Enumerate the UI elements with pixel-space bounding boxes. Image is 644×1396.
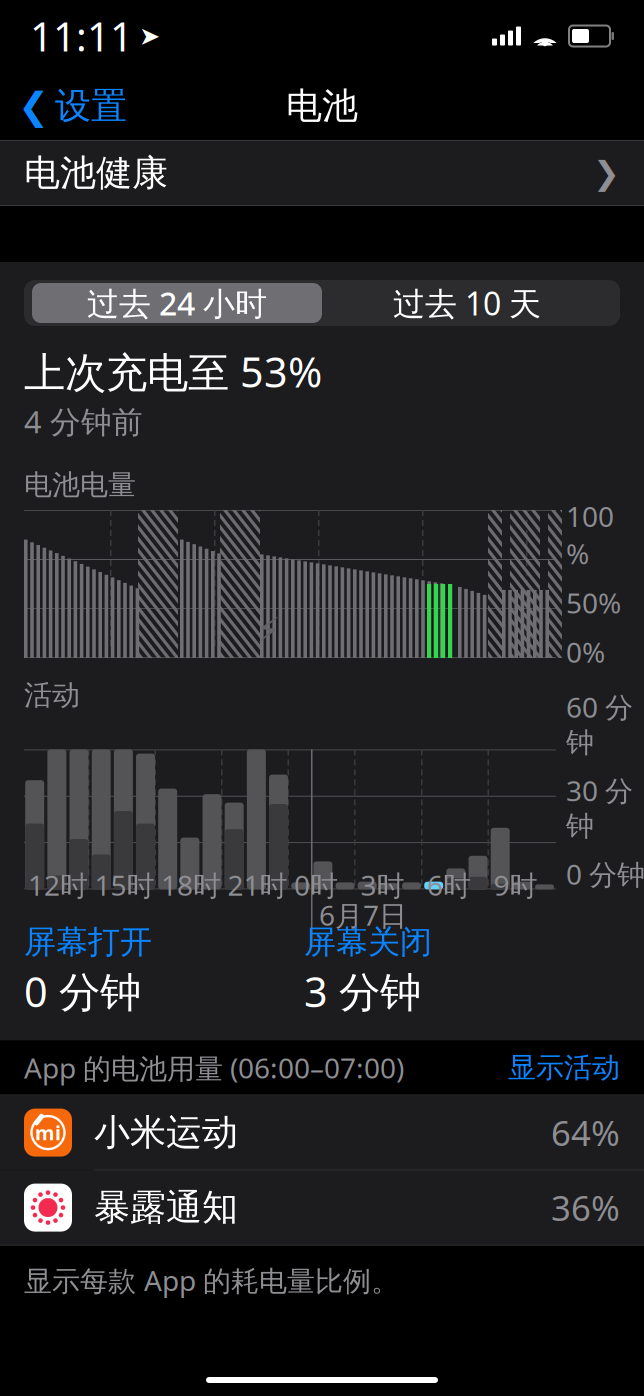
staticText: 小米运动: [94, 1110, 238, 1155]
staticText: 6月7日: [319, 896, 407, 934]
staticText: 4 分钟前: [24, 401, 143, 442]
staticText: 100%: [566, 498, 614, 572]
staticText: 36%: [551, 1185, 620, 1231]
staticText: 3 分钟: [304, 964, 421, 1019]
staticText: 屏幕关闭: [304, 922, 432, 962]
staticText: 3时: [360, 866, 404, 904]
staticText: 9时: [493, 866, 537, 904]
button[interactable]: 屏幕关闭: [304, 922, 584, 1019]
staticText: ⚡︎: [256, 611, 280, 650]
button[interactable]: mi: [0, 1096, 644, 1171]
button[interactable]: 电池健康: [0, 141, 644, 205]
staticText: 0时: [294, 866, 338, 904]
staticText: 电池健康: [24, 151, 168, 195]
staticText: 0%: [566, 633, 605, 670]
staticText: 0 分钟: [24, 964, 141, 1019]
staticText: 电池: [286, 84, 358, 128]
staticText: 显示活动: [508, 1050, 620, 1085]
staticText: ❮: [18, 85, 49, 127]
staticText: 上次充电至 53%: [24, 344, 322, 399]
staticText: App 的电池用量 (06:00–07:00): [24, 1049, 404, 1086]
button[interactable]: 屏幕打开: [24, 922, 304, 1019]
staticText: 电池电量: [24, 468, 136, 502]
staticText: 0 分钟: [566, 855, 644, 893]
staticText: mi: [35, 1119, 61, 1146]
staticText: ❯: [593, 155, 620, 191]
staticText: 设置: [55, 84, 127, 128]
staticText: 6时: [427, 866, 471, 904]
staticText: 显示每款 App 的耗电量比例。: [24, 1262, 399, 1299]
staticText: 21时: [227, 866, 287, 904]
staticText: 过去 10 天: [393, 282, 541, 324]
staticText: 暴露通知: [94, 1185, 238, 1230]
button[interactable]: 过去 24 小时: [32, 283, 322, 323]
staticText: ➤: [139, 22, 160, 50]
staticText: 18时: [161, 866, 221, 904]
button[interactable]: ❮: [0, 76, 127, 136]
staticText: 64%: [551, 1110, 620, 1156]
staticText: 60 分钟: [566, 688, 633, 760]
staticText: 50%: [566, 584, 621, 621]
staticText: 活动: [24, 678, 80, 712]
staticText: 过去 24 小时: [87, 282, 267, 324]
staticText: 屏幕打开: [24, 922, 152, 962]
staticText: 30 分钟: [566, 772, 633, 843]
staticText: 12时: [28, 866, 88, 904]
button[interactable]: 暴露通知: [0, 1171, 644, 1245]
staticText: 11:11: [30, 9, 133, 62]
button[interactable]: 显示活动: [508, 1050, 620, 1085]
button[interactable]: 过去 10 天: [322, 283, 612, 323]
staticText: 15时: [94, 866, 154, 904]
